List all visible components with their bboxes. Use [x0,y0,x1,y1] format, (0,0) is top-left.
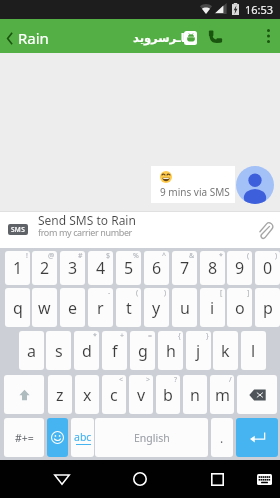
staticText: ) [164,288,167,298]
staticText: # [78,251,83,261]
staticText: . [220,430,224,446]
staticText: w [38,297,51,319]
button[interactable]: 5 [116,251,141,285]
staticText: 4 [96,257,106,279]
staticText: ] [247,288,250,298]
button[interactable]: h [158,331,183,370]
staticText: q [13,297,23,319]
button[interactable]: l [241,331,266,370]
button[interactable]: b [156,375,180,414]
staticText: Send SMS to Rain [38,212,136,228]
staticText: b [163,384,173,406]
staticText: [ [220,288,223,298]
staticText: 9 mins via SMS [160,185,230,199]
staticText: > [146,375,151,385]
staticText: #+= [15,431,34,445]
button[interactable]: y [144,288,169,327]
button[interactable]: Recent apps [195,460,239,498]
staticText: r [97,297,104,319]
button[interactable]: d [74,331,99,370]
button[interactable]: 8 [200,251,225,285]
staticText: ) [275,251,278,261]
button[interactable]: e [60,288,85,327]
button[interactable]: i [200,288,225,327]
button[interactable]: 2 [32,251,57,285]
staticText: a [27,340,36,362]
button[interactable]: Hide keyboard [252,460,276,498]
button[interactable]: s [46,331,71,370]
button[interactable]: Emoji [47,418,68,457]
button[interactable]: f [102,331,127,370]
button[interactable]: m [210,375,234,414]
staticText: l [251,340,256,362]
button[interactable]: 4 [88,251,113,285]
button[interactable]: n [183,375,207,414]
button[interactable]: t [116,288,141,327]
staticText: * [93,331,97,341]
staticText: & [189,251,195,261]
button[interactable]: Back [40,460,84,498]
button[interactable]: Home [118,460,162,498]
button[interactable]: q [5,288,30,327]
staticText: z [56,384,64,406]
button[interactable]: c [102,375,126,414]
button[interactable]: Symbols [4,418,44,457]
staticText: c [110,384,118,406]
button[interactable]: Space [95,418,208,457]
staticText: d [82,340,92,362]
staticText: - [108,288,111,298]
button[interactable]: r [88,288,113,327]
button[interactable]: w [32,288,57,327]
staticText: ^ [162,251,167,261]
button[interactable]: 6 [144,251,169,285]
button[interactable]: Shift [4,375,44,414]
staticText: 6 [152,257,162,279]
staticText: 8 [208,257,218,279]
button[interactable]: More options [256,19,280,53]
staticText: i [210,297,215,319]
button[interactable]: a [19,331,44,370]
button[interactable]: 9 [227,251,252,285]
button[interactable]: v [129,375,153,414]
staticText: 2 [40,257,50,279]
button[interactable]: k [213,331,238,370]
button[interactable]: 1 [5,251,30,285]
button[interactable]: 0 [255,251,280,285]
staticText: t [126,297,132,319]
button[interactable]: Enter [236,418,278,457]
staticText: f [112,340,118,362]
staticText: < [119,375,124,385]
button[interactable]: Attach file [250,211,280,248]
staticText: % [133,251,139,261]
button[interactable]: Back [0,19,18,53]
staticText: { [178,331,181,341]
button[interactable]: 3 [60,251,85,285]
staticText: abc [74,430,92,444]
staticText: $ [106,251,111,261]
button[interactable]: z [48,375,72,414]
button[interactable]: p [255,288,280,327]
button[interactable]: j [186,331,211,370]
staticText: Rain [18,28,49,48]
button[interactable]: o [227,288,252,327]
staticText: * [219,251,223,261]
staticText: m [215,384,230,406]
staticText: SMS [11,225,26,234]
button[interactable]: g [130,331,155,370]
staticText: y [152,297,161,319]
button[interactable]: Switch to letters [71,418,94,457]
staticText: v [137,384,146,406]
button[interactable]: Call [204,19,226,53]
button[interactable]: 9 mins via SMS [151,166,235,203]
staticText: x [83,384,92,406]
button[interactable]: 7 [172,251,197,285]
staticText: + [120,331,125,341]
button[interactable]: Backspace [237,375,277,414]
staticText: ( [247,251,250,261]
staticText: ! [26,251,28,261]
button[interactable]: x [75,375,99,414]
staticText: h [166,340,176,362]
staticText: = [148,331,153,341]
button[interactable]: u [172,288,197,327]
button[interactable]: Period [211,418,233,457]
